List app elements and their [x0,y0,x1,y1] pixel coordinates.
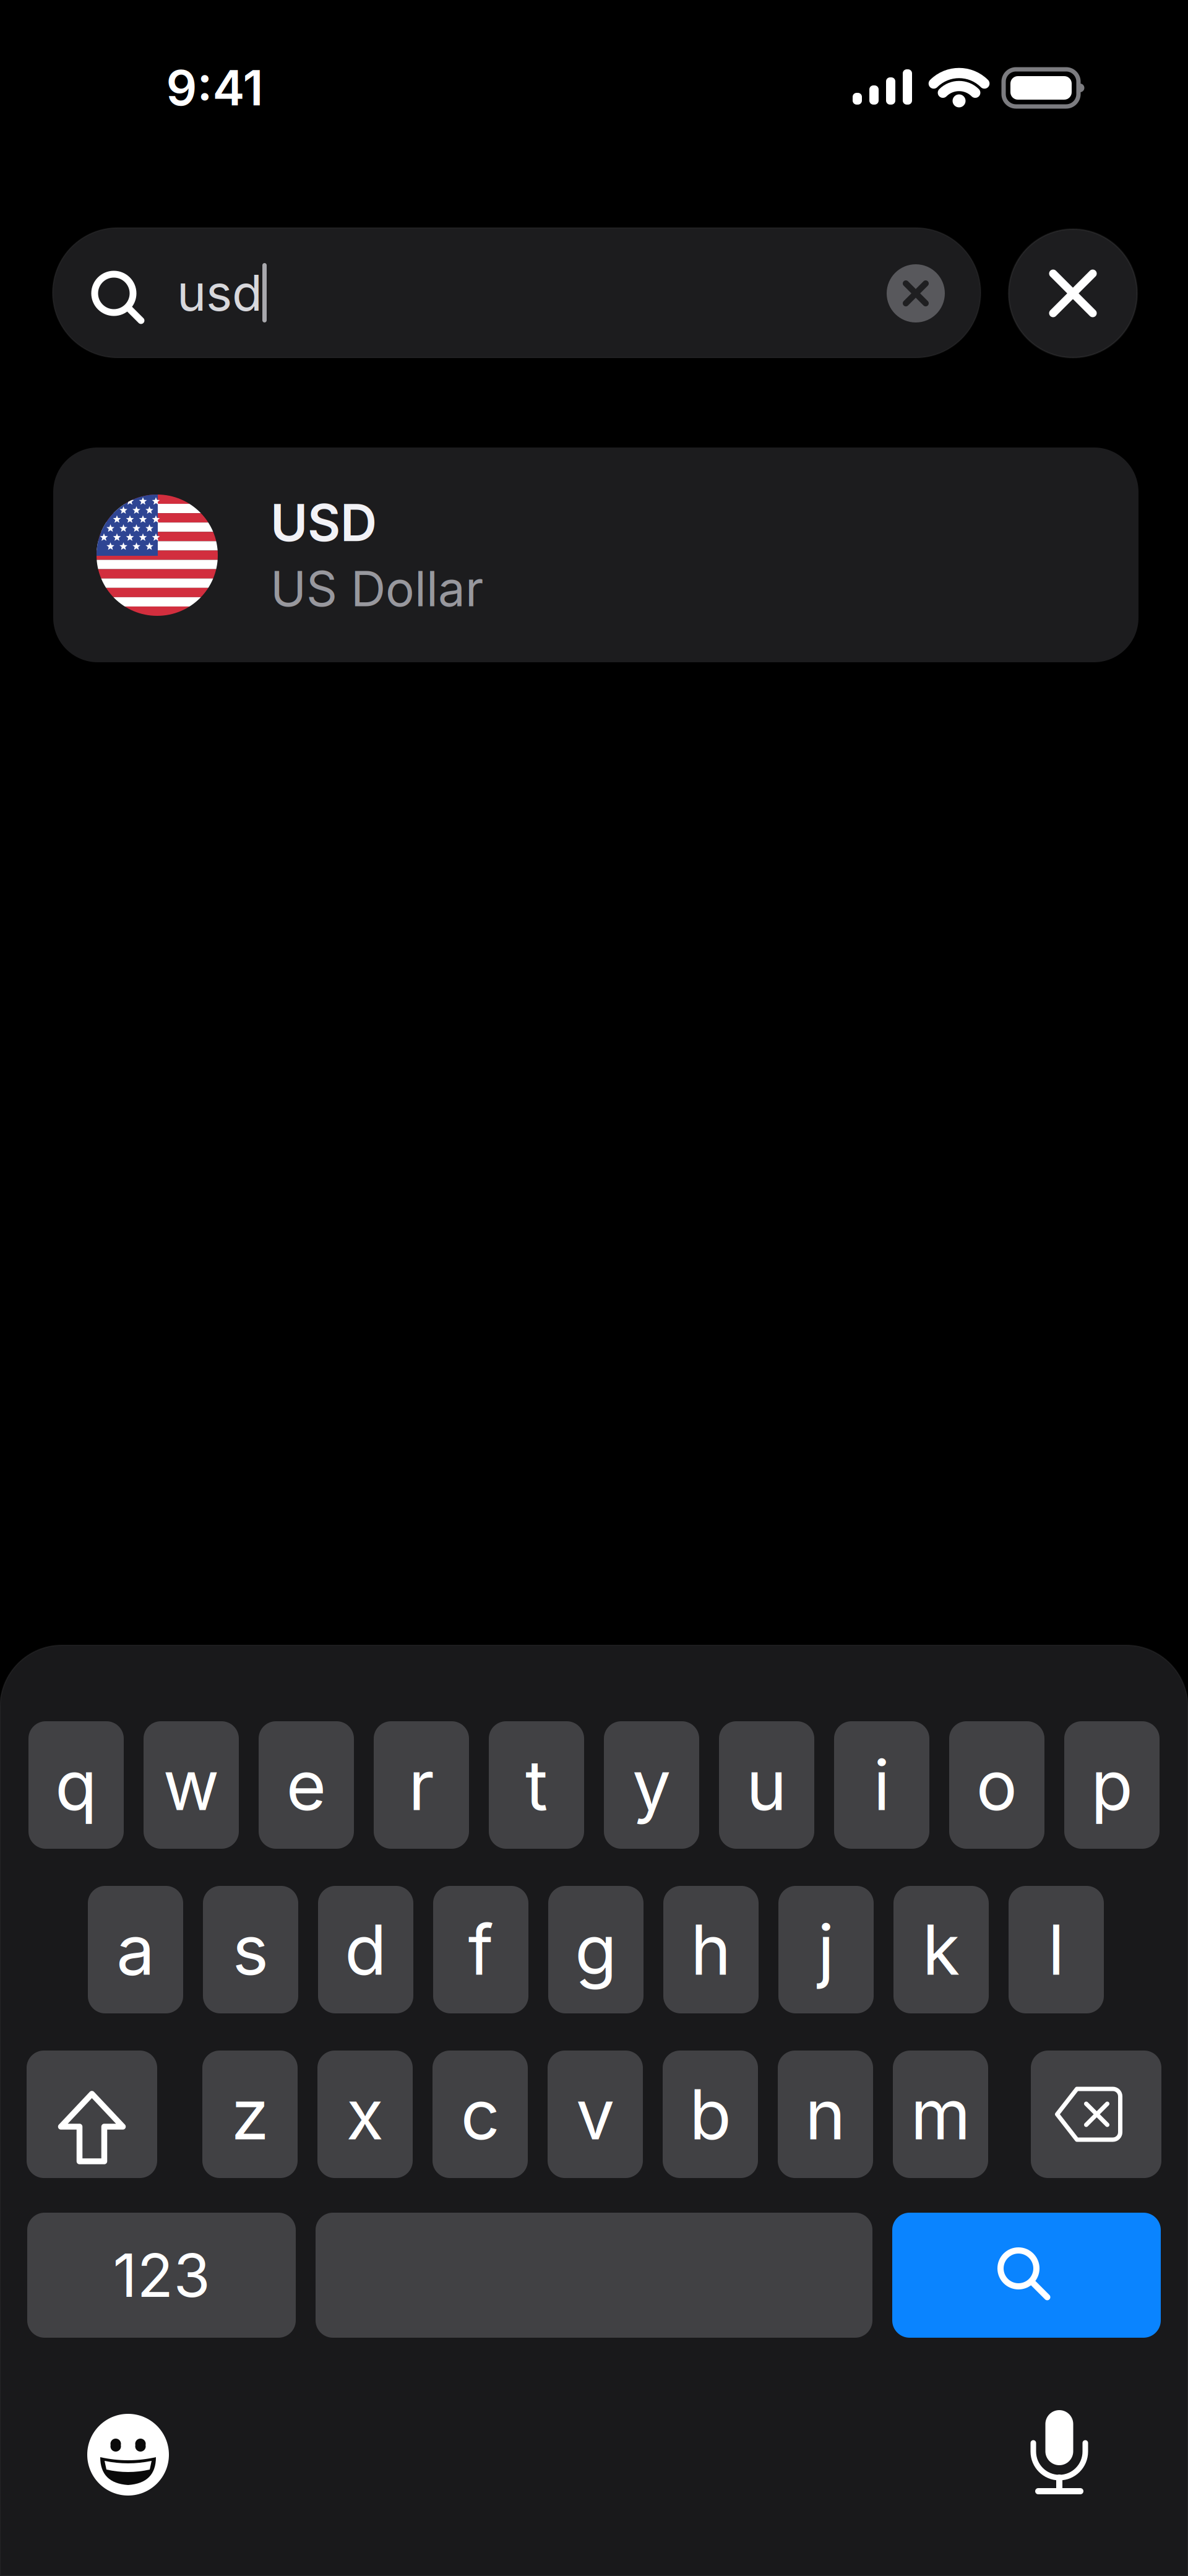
staticText: c [461,2073,500,2156]
button[interactable]: Shift [27,2051,157,2178]
staticText: n [805,2073,846,2156]
staticText: usd [177,263,262,323]
button[interactable]: p [1064,1721,1160,1849]
staticText: USD [270,492,377,553]
staticText: y [632,1743,671,1827]
button[interactable]: x [317,2051,413,2178]
button[interactable]: l [1009,1886,1104,2013]
staticText: m [910,2073,971,2156]
button[interactable]: y [604,1721,699,1849]
staticText: o [976,1743,1018,1827]
staticText: w [163,1743,219,1827]
button[interactable]: 123 [27,2213,296,2338]
button[interactable]: b [663,2051,758,2178]
button[interactable]: o [949,1721,1044,1849]
staticText: 123 [113,2239,210,2311]
staticText: e [286,1743,326,1827]
staticText: r [408,1743,434,1827]
staticText: 9:41 [166,59,263,117]
button[interactable]: u [719,1721,814,1849]
button[interactable]: r [374,1721,469,1849]
button[interactable]: n [778,2051,873,2178]
button[interactable]: Delete [1031,2051,1161,2178]
button[interactable]: m [893,2051,988,2178]
staticText: g [575,1908,617,1991]
button[interactable]: t [489,1721,584,1849]
button[interactable]: f [433,1886,528,2013]
staticText: u [746,1743,787,1827]
button[interactable]: usd [53,228,981,358]
staticText: h [691,1908,731,1991]
button[interactable]: v [548,2051,643,2178]
button[interactable]: s [203,1886,298,2013]
button[interactable]: i [834,1721,929,1849]
button[interactable]: w [144,1721,239,1849]
button[interactable]: g [548,1886,643,2013]
button[interactable]: h [663,1886,759,2013]
button[interactable]: j [778,1886,874,2013]
button[interactable]: Search [892,2213,1161,2338]
button[interactable]: e [259,1721,354,1849]
button[interactable]: a [88,1886,183,2013]
button[interactable]: USD [53,447,1138,662]
button[interactable]: d [318,1886,413,2013]
staticText: x [346,2073,384,2156]
staticText: j [818,1908,834,1991]
staticText: z [231,2073,269,2156]
staticText: l [1048,1908,1065,1991]
staticText: q [55,1743,97,1827]
staticText: d [345,1908,387,1991]
button[interactable]: Emoji [87,2414,169,2496]
staticText: f [468,1908,493,1991]
button[interactable]: q [28,1721,124,1849]
staticText: k [922,1908,960,1991]
staticText: b [689,2073,731,2156]
button[interactable]: z [202,2051,298,2178]
button[interactable]: Close search [1009,229,1137,358]
button[interactable]: c [433,2051,528,2178]
staticText: i [873,1743,890,1827]
staticText: t [525,1743,548,1827]
button[interactable]: Clear text [887,264,945,322]
staticText: s [232,1908,269,1991]
staticText: US Dollar [270,559,483,618]
button[interactable]: Dictate [1018,2408,1100,2494]
button[interactable]: k [893,1886,989,2013]
staticText: p [1091,1743,1133,1827]
staticText: v [576,2073,614,2156]
staticText: a [116,1908,155,1991]
